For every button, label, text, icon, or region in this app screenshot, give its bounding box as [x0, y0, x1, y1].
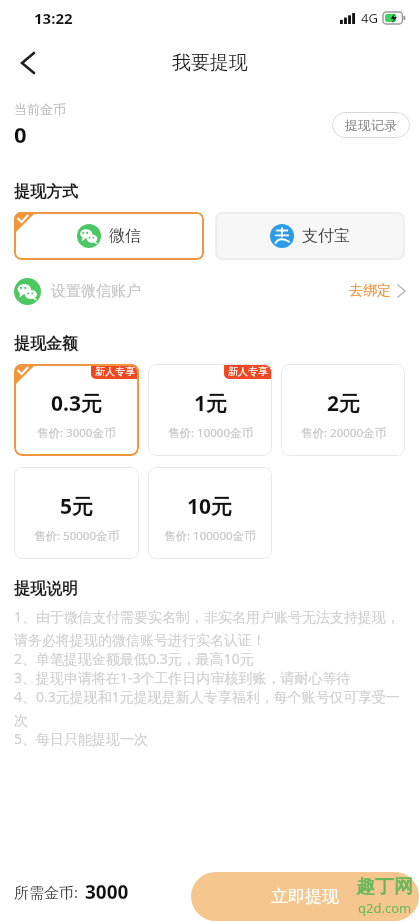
staticText: 3000: [85, 879, 129, 905]
staticText: 5、每日只能提现一次: [14, 729, 149, 748]
staticText: 0: [14, 119, 27, 149]
staticText: q2d.com: [358, 899, 412, 917]
staticText: 13:22: [34, 8, 73, 28]
button[interactable]: 提现记录: [332, 112, 410, 138]
staticText: 所需金币:: [14, 882, 79, 902]
staticText: 新人专享: [95, 365, 135, 378]
staticText: 售价: 20000金币: [301, 425, 386, 441]
button[interactable]: 新人专享: [14, 364, 139, 456]
staticText: 5元: [60, 492, 94, 521]
staticText: 1元: [194, 389, 228, 418]
staticText: 微信: [109, 226, 141, 246]
button[interactable]: 5元: [14, 467, 139, 559]
staticText: 售价: 50000金币: [34, 528, 119, 544]
staticText: 设置微信账户: [51, 282, 141, 301]
button[interactable]: 10元: [148, 467, 272, 559]
staticText: 售价: 3000金币: [37, 425, 116, 441]
button[interactable]: 新人专享: [148, 364, 272, 456]
staticText: 提现记录: [345, 117, 397, 133]
staticText: 2、单笔提现金额最低0.3元，最高10元: [14, 649, 254, 668]
button[interactable]: 设置微信账户: [0, 274, 419, 308]
staticText: 售价: 10000金币: [168, 425, 253, 441]
staticText: 3、提现申请将在1-3个工作日内审核到账，请耐心等待: [14, 668, 351, 687]
staticText: 提现方式: [14, 182, 78, 202]
button[interactable]: 微信: [14, 212, 204, 260]
staticText: 4G: [361, 9, 378, 27]
staticText: 新人专享: [228, 365, 268, 378]
staticText: 10元: [187, 492, 233, 521]
staticText: 趣丁网: [356, 875, 413, 899]
staticText: 4、0.3元提现和1元提现是新人专享福利，每个账号仅可享受一次: [14, 687, 405, 729]
staticText: 2元: [327, 389, 361, 418]
staticText: 1、由于微信支付需要实名制，非实名用户账号无法支持提现，请务必将提现的微信账号进…: [14, 607, 405, 649]
staticText: 0.3元: [51, 389, 102, 418]
staticText: 提现说明: [14, 579, 78, 599]
button[interactable]: 立即提现: [191, 872, 419, 921]
button[interactable]: 2元: [281, 364, 405, 456]
staticText: 当前金币: [14, 101, 66, 117]
staticText: 我要提现: [172, 51, 248, 75]
button[interactable]: 支付宝: [215, 212, 405, 260]
button[interactable]: Back: [6, 41, 50, 85]
staticText: 立即提现: [271, 886, 339, 907]
staticText: 售价: 100000金币: [164, 528, 256, 544]
staticText: 提现金额: [14, 334, 78, 354]
staticText: 去绑定: [349, 282, 391, 300]
staticText: 支付宝: [302, 226, 350, 246]
